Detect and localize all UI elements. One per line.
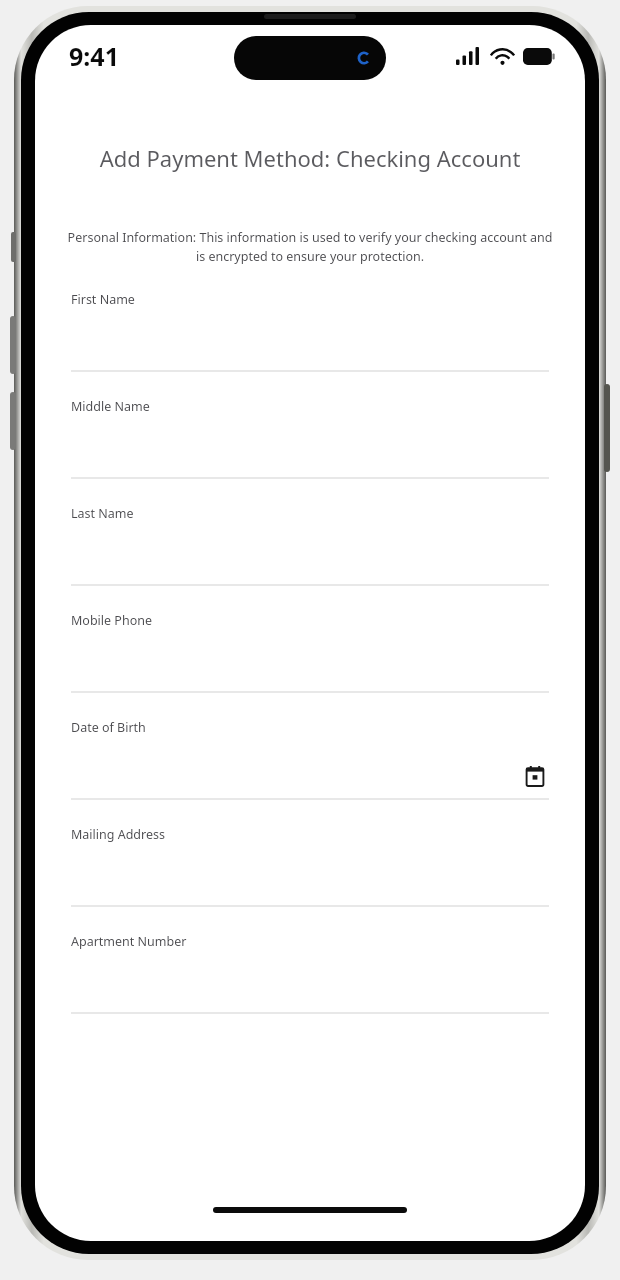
staticText: Date of Birth <box>71 719 146 736</box>
staticText: Mobile Phone <box>71 612 152 629</box>
button[interactable]: Last Name <box>71 505 549 612</box>
staticText: Personal Information: This information i… <box>67 229 553 265</box>
button[interactable]: Apartment Number <box>71 933 549 1040</box>
staticText: Middle Name <box>71 398 150 415</box>
staticText: First Name <box>71 291 135 308</box>
staticText: Last Name <box>71 505 134 522</box>
button[interactable]: Date of Birth <box>71 719 549 826</box>
staticText: Apartment Number <box>71 933 187 950</box>
button[interactable]: First Name <box>71 291 549 398</box>
button[interactable]: Middle Name <box>71 398 549 505</box>
staticText: 9:41 <box>69 39 119 73</box>
staticText: Mailing Address <box>71 826 165 843</box>
button[interactable]: Mobile Phone <box>71 612 549 719</box>
button[interactable]: Open date picker <box>521 762 549 790</box>
button[interactable]: Mailing Address <box>71 826 549 933</box>
staticText: Add Payment Method: Checking Account <box>35 143 585 173</box>
